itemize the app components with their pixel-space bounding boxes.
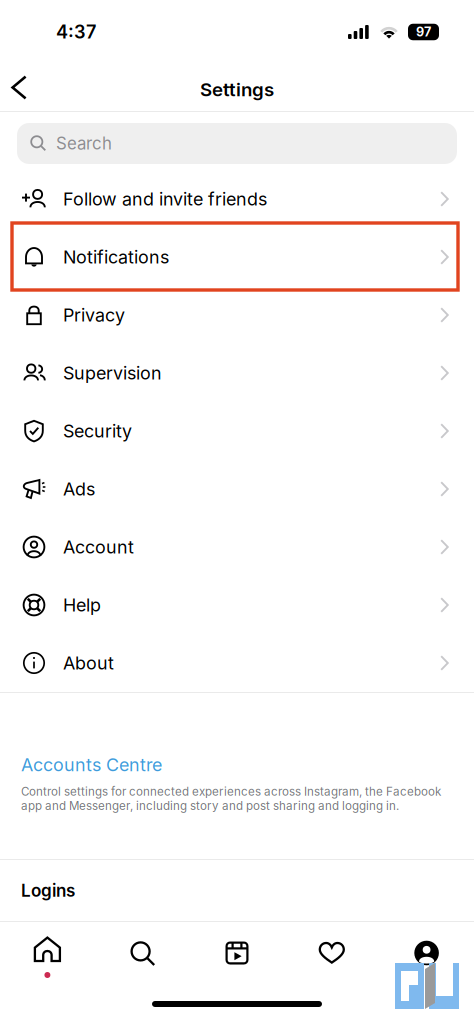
button[interactable]: Help (0, 576, 474, 634)
staticText: Privacy (63, 304, 125, 326)
button[interactable]: Follow and invite friends (0, 170, 474, 228)
staticText: Ads (63, 478, 95, 500)
staticText: Notifications (63, 246, 169, 268)
button[interactable]: Activity (284, 922, 379, 984)
staticText: Settings (200, 78, 274, 101)
button[interactable]: Accounts Centre (21, 754, 162, 776)
button[interactable]: Account (0, 518, 474, 576)
staticText: Help (63, 594, 101, 616)
button[interactable]: Search (95, 922, 190, 984)
staticText: Supervision (63, 362, 162, 384)
staticText: Logins (21, 880, 75, 901)
staticText: About (63, 652, 114, 674)
staticText: 97 (416, 24, 431, 40)
button[interactable]: Notifications (0, 228, 474, 286)
button[interactable]: Supervision (0, 344, 474, 402)
button[interactable]: Home (0, 922, 95, 984)
staticText: Security (63, 420, 132, 442)
button[interactable]: Profile (379, 922, 474, 984)
staticText: Account (63, 536, 134, 558)
button[interactable]: Security (0, 402, 474, 460)
staticText: Search (56, 133, 112, 154)
button[interactable]: Search (0, 112, 474, 170)
button[interactable]: Ads (0, 460, 474, 518)
staticText: Accounts Centre (21, 754, 162, 776)
button[interactable]: Reels (190, 922, 284, 984)
staticText: Follow and invite friends (63, 188, 267, 210)
staticText: Control settings for connected experienc… (21, 785, 441, 813)
button[interactable]: About (0, 634, 474, 692)
button[interactable]: Back (0, 64, 44, 111)
staticText: 4:37 (56, 21, 96, 43)
button[interactable]: Privacy (0, 286, 474, 344)
